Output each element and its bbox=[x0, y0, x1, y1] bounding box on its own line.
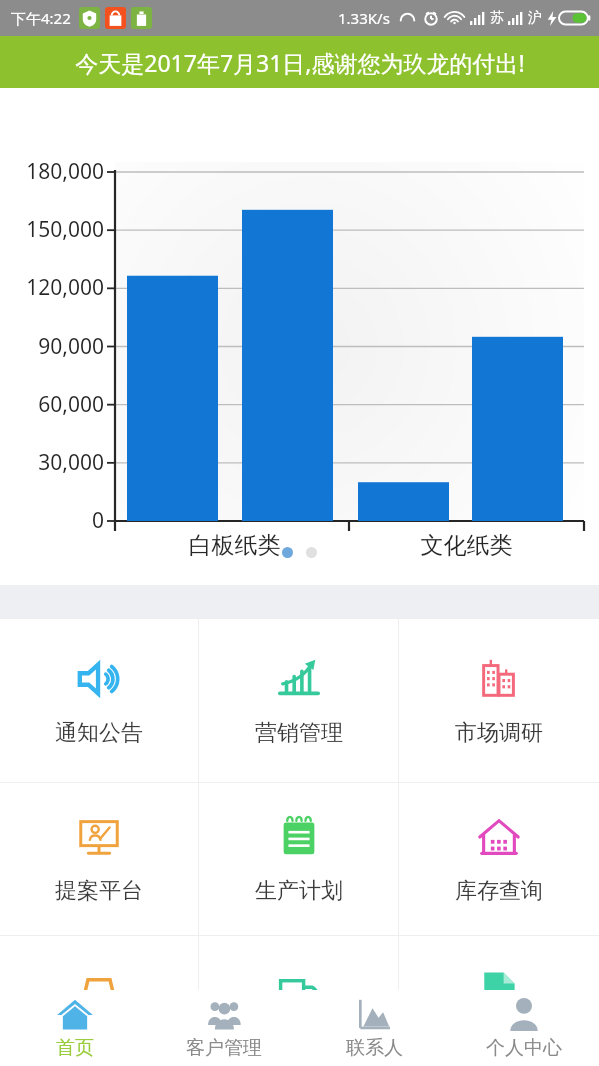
button[interactable]: 通知公告 bbox=[0, 619, 198, 782]
button[interactable]: 物流查询 bbox=[199, 936, 398, 1000]
staticText: 个人中心 bbox=[486, 1036, 562, 1060]
button[interactable]: 个人中心 bbox=[449, 990, 599, 1066]
staticText: 白板纸类 bbox=[120, 531, 349, 560]
staticText: 1.33K/s bbox=[338, 8, 390, 28]
staticText: 文化纸类 bbox=[349, 531, 584, 560]
button[interactable] bbox=[306, 547, 317, 558]
staticText: 客户管理 bbox=[186, 1036, 262, 1060]
button[interactable] bbox=[282, 547, 293, 558]
button[interactable]: 营销管理 bbox=[199, 619, 398, 782]
staticText: 市场调研 bbox=[455, 719, 543, 747]
button[interactable]: 文档中心 bbox=[399, 936, 599, 1000]
staticText: 提案平台 bbox=[55, 877, 143, 905]
staticText: 库存查询 bbox=[455, 877, 543, 905]
staticText: 60,000 bbox=[0, 390, 104, 419]
button[interactable]: 提案平台 bbox=[0, 783, 198, 935]
button[interactable]: 客户管理 bbox=[149, 990, 299, 1066]
button[interactable]: 今天是2017年7月31日,感谢您为玖龙的付出! bbox=[0, 36, 599, 88]
button[interactable]: 首页 bbox=[0, 990, 149, 1066]
staticText: 下午4:22 bbox=[11, 8, 71, 28]
staticText: 苏 bbox=[490, 9, 504, 27]
staticText: 生产计划 bbox=[255, 877, 343, 905]
staticText: 0 bbox=[0, 506, 104, 535]
staticText: 联系人 bbox=[346, 1036, 403, 1060]
staticText: 通知公告 bbox=[55, 719, 143, 747]
button[interactable]: 会议管理 bbox=[0, 936, 198, 1000]
staticText: 今天是2017年7月31日,感谢您为玖龙的付出! bbox=[75, 47, 525, 78]
staticText: 150,000 bbox=[0, 215, 104, 244]
staticText: 180,000 bbox=[0, 157, 104, 186]
staticText: 120,000 bbox=[0, 273, 104, 302]
button[interactable]: 库存查询 bbox=[399, 783, 599, 935]
button[interactable]: 生产计划 bbox=[199, 783, 398, 935]
button[interactable]: 联系人 bbox=[299, 990, 449, 1066]
staticText: 首页 bbox=[56, 1036, 94, 1060]
staticText: 营销管理 bbox=[255, 719, 343, 747]
staticText: 90,000 bbox=[0, 332, 104, 361]
staticText: 30,000 bbox=[0, 448, 104, 477]
button[interactable]: 市场调研 bbox=[399, 619, 599, 782]
staticText: 沪 bbox=[528, 9, 542, 27]
